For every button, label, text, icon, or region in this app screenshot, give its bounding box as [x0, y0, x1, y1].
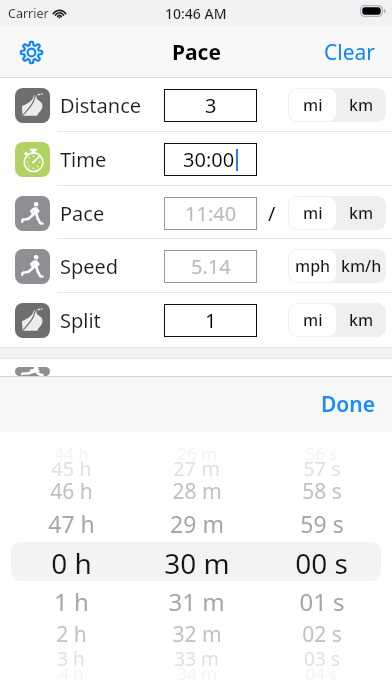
staticText: 27 m [173, 455, 220, 482]
staticText: 03 s [304, 646, 340, 672]
staticText: 30:00 [183, 146, 235, 173]
staticText: Carrier [8, 5, 49, 22]
staticText: 5.14 [191, 253, 231, 280]
staticText: 1 h [54, 585, 89, 618]
staticText: km [349, 309, 374, 331]
staticText: 44 h [54, 442, 89, 465]
staticText: km/h [341, 255, 382, 277]
button[interactable]: km [337, 303, 386, 337]
button[interactable]: 11:40 [164, 197, 257, 230]
button[interactable]: 5.14 [164, 250, 257, 283]
button[interactable]: km/h [337, 249, 386, 283]
button[interactable]: mi [289, 304, 336, 336]
staticText: Pace [60, 200, 105, 227]
staticText: mi [303, 202, 323, 224]
staticText: 31 m [168, 585, 225, 618]
staticText: 59 s [300, 508, 344, 539]
staticText: 26 m [177, 442, 217, 465]
staticText: Clear [324, 38, 375, 67]
staticText: 01 s [299, 585, 345, 618]
button[interactable]: Speed [0, 239, 392, 293]
staticText: Split [60, 307, 101, 334]
staticText: 30 m [164, 544, 230, 582]
staticText: 47 h [48, 508, 95, 539]
staticText: 10:46 AM [165, 4, 227, 23]
button[interactable]: Done [305, 377, 392, 432]
staticText: mi [303, 309, 323, 331]
staticText: Speed [60, 253, 119, 280]
staticText: / [268, 200, 276, 227]
staticText: 46 h [50, 477, 93, 506]
staticText: km [349, 202, 374, 224]
staticText: Pace [172, 38, 221, 67]
button[interactable]: Time [0, 132, 392, 186]
staticText: 00 s [295, 544, 348, 582]
staticText: 45 h [51, 455, 92, 482]
button[interactable]: 1 [164, 304, 257, 337]
staticText: mph [295, 255, 331, 277]
staticText: 34 m [177, 662, 217, 685]
button[interactable]: 30:00 [164, 143, 257, 176]
staticText: 3 h [57, 646, 85, 672]
button[interactable]: Clear [312, 26, 392, 78]
staticText: 02 s [302, 620, 342, 649]
staticText: 28 m [172, 477, 222, 506]
button[interactable]: Settings [10, 31, 52, 73]
staticText: km [349, 94, 374, 116]
button[interactable]: mi [289, 197, 336, 229]
button[interactable]: 3 [164, 89, 257, 122]
staticText: 29 m [170, 508, 224, 539]
staticText: 04 s [305, 662, 338, 685]
staticText: 2 h [56, 620, 87, 649]
button[interactable]: Pace [0, 186, 392, 240]
button[interactable]: km [337, 88, 386, 122]
button[interactable]: mi [289, 89, 336, 121]
staticText: Distance [60, 92, 142, 119]
staticText: Done [321, 390, 376, 419]
staticText: 58 s [302, 477, 342, 506]
staticText: mi [303, 94, 323, 116]
button[interactable]: mph [289, 250, 336, 282]
staticText: 4 h [59, 662, 84, 685]
button[interactable]: km [337, 196, 386, 230]
button[interactable]: Split [0, 293, 392, 347]
staticText: 33 m [174, 646, 219, 672]
staticText: 3 [205, 92, 217, 119]
staticText: 56 s [305, 442, 338, 465]
staticText: Time [60, 146, 107, 173]
staticText: 0 h [51, 544, 92, 582]
staticText: 32 m [172, 620, 222, 649]
staticText: 1 [205, 307, 217, 334]
staticText: 11:40 [185, 200, 237, 227]
button[interactable]: Distance [0, 78, 392, 132]
staticText: 57 s [303, 455, 341, 482]
